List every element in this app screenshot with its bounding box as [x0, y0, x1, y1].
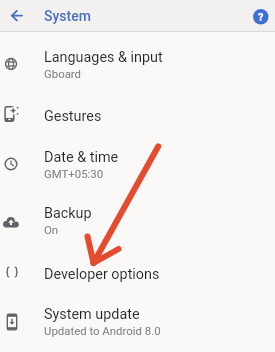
- button[interactable]: Developer options: [0, 255, 275, 288]
- staticText: ?: [258, 11, 264, 24]
- button[interactable]: System update: [0, 296, 275, 345]
- staticText: Languages & input: [44, 49, 163, 66]
- staticText: On: [44, 223, 59, 236]
- button[interactable]: [7, 6, 26, 25]
- staticText: Date & time: [44, 149, 119, 166]
- button[interactable]: Backup: [0, 196, 275, 244]
- staticText: Gestures: [44, 108, 102, 125]
- staticText: GMT+05:30: [44, 167, 104, 180]
- button[interactable]: Date & time: [0, 139, 275, 187]
- button[interactable]: Gestures: [0, 98, 275, 131]
- staticText: Updated to Android 8.0: [44, 324, 161, 337]
- staticText: System: [44, 8, 91, 24]
- staticText: Gboard: [44, 67, 82, 80]
- button[interactable]: ?: [253, 9, 269, 25]
- staticText: Developer options: [44, 266, 160, 283]
- staticText: Backup: [44, 205, 92, 222]
- staticText: System update: [44, 306, 140, 323]
- button[interactable]: Languages & input: [0, 40, 275, 88]
